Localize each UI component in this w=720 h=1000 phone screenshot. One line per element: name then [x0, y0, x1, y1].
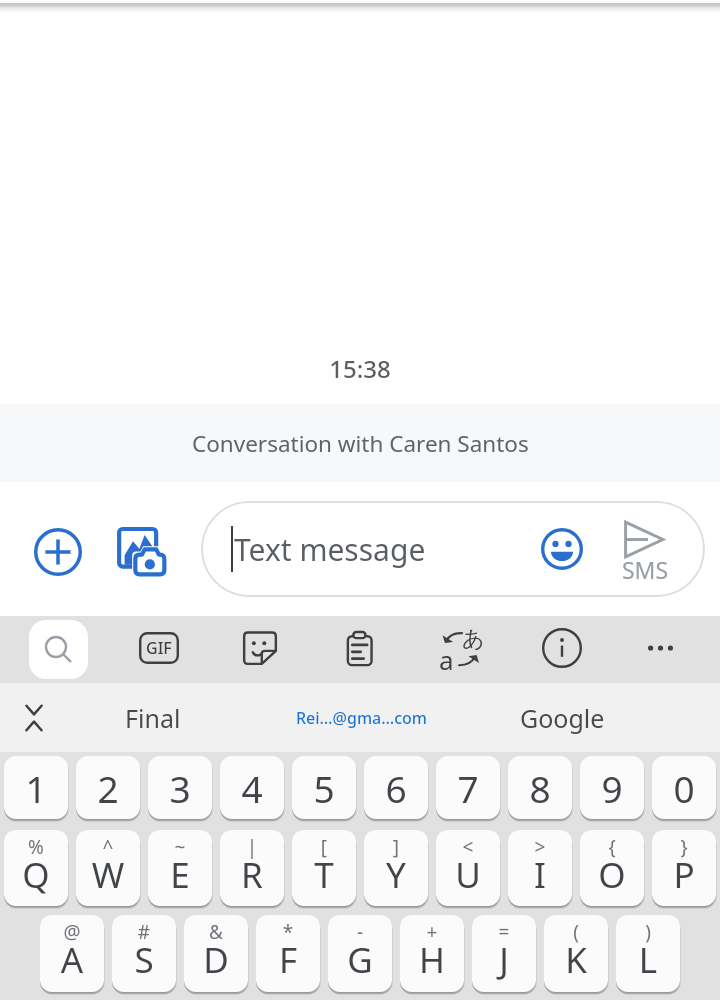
button[interactable]: {	[580, 830, 644, 906]
staticText: GIF	[146, 637, 172, 659]
staticText: K	[544, 936, 608, 984]
staticText: |	[220, 834, 284, 860]
staticText: 6	[364, 763, 428, 813]
staticText: *	[256, 919, 320, 945]
button[interactable]: ~	[148, 830, 212, 906]
button[interactable]: -	[328, 915, 392, 992]
staticText: S	[112, 936, 176, 984]
staticText: ~	[148, 834, 212, 860]
button[interactable]: <	[436, 830, 500, 906]
staticText: F	[256, 936, 320, 984]
staticText: D	[184, 936, 248, 984]
staticText: Final	[125, 701, 181, 735]
button[interactable]: Emoji	[531, 518, 593, 580]
staticText: O	[580, 851, 644, 899]
button[interactable]: Send SMS	[605, 509, 685, 589]
button[interactable]: 3	[148, 756, 212, 819]
button[interactable]: &	[184, 915, 248, 992]
staticText: (	[544, 919, 608, 945]
staticText: +	[400, 919, 464, 945]
staticText: 9	[580, 763, 644, 813]
staticText: SMS	[605, 554, 685, 585]
staticText: Text message	[234, 529, 426, 570]
button[interactable]: Send picture	[100, 510, 184, 594]
staticText: Google	[520, 701, 605, 735]
button[interactable]: #	[112, 915, 176, 992]
staticText: &	[184, 919, 248, 945]
staticText: J	[472, 936, 536, 984]
staticText: =	[472, 919, 536, 945]
button[interactable]: >	[508, 830, 572, 906]
button[interactable]: Google	[460, 683, 664, 752]
staticText: R	[220, 851, 284, 899]
button[interactable]: |	[220, 830, 284, 906]
staticText: U	[436, 851, 500, 899]
button[interactable]: Stickers	[228, 616, 292, 680]
button[interactable]: (	[544, 915, 608, 992]
staticText: Conversation with Caren Santos	[192, 428, 529, 459]
button[interactable]: 2	[76, 756, 140, 819]
staticText: G	[328, 936, 392, 984]
staticText: Y	[364, 851, 428, 899]
staticText: 1	[4, 763, 68, 813]
staticText: [	[292, 834, 356, 860]
staticText: a	[439, 642, 454, 677]
button[interactable]: [	[292, 830, 356, 906]
button[interactable]: 4	[220, 756, 284, 819]
button[interactable]: Clipboard	[329, 616, 393, 680]
staticText: ]	[364, 834, 428, 860]
staticText: <	[436, 834, 500, 860]
button[interactable]: 8	[508, 756, 572, 819]
button[interactable]: )	[616, 915, 680, 992]
staticText: E	[148, 851, 212, 899]
button[interactable]: ]	[364, 830, 428, 906]
staticText: 5	[292, 763, 356, 813]
button[interactable]: }	[652, 830, 716, 906]
button[interactable]: 7	[436, 756, 500, 819]
staticText: ^	[76, 834, 140, 860]
staticText: 2	[76, 763, 140, 813]
button[interactable]: 9	[580, 756, 644, 819]
button[interactable]: Add attachment	[16, 510, 100, 594]
staticText: }	[652, 834, 716, 860]
staticText: W	[76, 851, 140, 899]
staticText: %	[4, 834, 68, 860]
button[interactable]: Translate	[429, 616, 493, 680]
staticText: I	[508, 851, 572, 899]
button[interactable]: Rei…@gma…com	[259, 683, 463, 752]
staticText: A	[40, 936, 104, 984]
button[interactable]: GIF	[127, 616, 191, 680]
staticText: Q	[4, 851, 68, 899]
staticText: L	[616, 936, 680, 984]
button[interactable]: %	[4, 830, 68, 906]
button[interactable]: Final	[51, 683, 255, 752]
button[interactable]: 1	[4, 756, 68, 819]
staticText: 4	[220, 763, 284, 813]
button[interactable]: +	[400, 915, 464, 992]
staticText: >	[508, 834, 572, 860]
staticText: 3	[148, 763, 212, 813]
button[interactable]: Search	[29, 620, 88, 679]
staticText: 0	[652, 763, 716, 813]
staticText: Rei…@gma…com	[296, 707, 427, 729]
staticText: あ	[462, 625, 485, 653]
button[interactable]: 5	[292, 756, 356, 819]
staticText: )	[616, 919, 680, 945]
button[interactable]: Expand suggestions	[0, 683, 68, 752]
button[interactable]: @	[40, 915, 104, 992]
button[interactable]: =	[472, 915, 536, 992]
staticText: {	[580, 834, 644, 860]
staticText: P	[652, 851, 716, 899]
button[interactable]: Text message	[201, 501, 705, 597]
button[interactable]: 0	[652, 756, 716, 819]
button[interactable]: ^	[76, 830, 140, 906]
button[interactable]: Info	[530, 616, 594, 680]
button[interactable]: 6	[364, 756, 428, 819]
button[interactable]: More options	[628, 616, 692, 680]
staticText: 7	[436, 763, 500, 813]
staticText: H	[400, 936, 464, 984]
button[interactable]: *	[256, 915, 320, 992]
staticText: 15:38	[0, 352, 720, 385]
staticText: T	[292, 851, 356, 899]
staticText: @	[40, 919, 104, 945]
